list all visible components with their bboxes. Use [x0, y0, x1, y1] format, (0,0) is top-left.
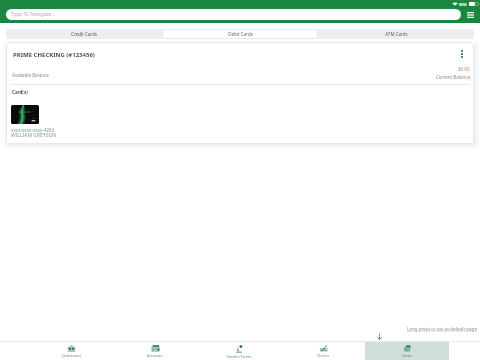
staticText: $0.00 — [458, 66, 470, 72]
button[interactable]: ATM Cards — [318, 29, 474, 39]
staticText: Transfer Funds — [226, 354, 252, 359]
button[interactable]: More options — [457, 47, 466, 60]
button[interactable]: Checks — [281, 342, 365, 360]
staticText: 50% — [459, 2, 467, 7]
staticText: ATM Cards — [385, 31, 408, 37]
staticText: Credit Cards — [71, 31, 97, 37]
button[interactable]: Debit Cards — [162, 29, 318, 39]
staticText: Card(s) — [12, 89, 28, 95]
staticText: Checks — [317, 353, 329, 358]
staticText: Accounts — [147, 353, 163, 358]
button[interactable]: Debit card — [11, 105, 39, 124]
staticText: Dashboard — [62, 353, 81, 358]
staticText: Current Balance — [436, 74, 470, 80]
button[interactable]: Dashboard — [29, 342, 113, 360]
button[interactable]: Cards — [365, 342, 449, 360]
staticText: Cards — [402, 353, 412, 358]
button[interactable]: Menu — [463, 8, 477, 21]
staticText: WILLIAM GREYSON — [11, 132, 57, 139]
button[interactable]: Transfer Funds — [197, 342, 281, 360]
staticText: Available Balance — [12, 72, 49, 78]
staticText: Debit Cards — [228, 31, 253, 37]
button[interactable]: Credit Cards — [6, 29, 162, 39]
button[interactable]: Type To Navigate... — [6, 9, 461, 20]
staticText: PRIME CHECKING (#123456) — [13, 51, 95, 59]
staticText: xxxx-xxxx-xxxx-4283 — [11, 127, 55, 133]
button[interactable]: Accounts — [113, 342, 197, 360]
other: Scroll down — [376, 333, 383, 340]
staticText: Type To Navigate... — [11, 11, 56, 18]
staticText: Long press to set as default page — [407, 326, 477, 332]
